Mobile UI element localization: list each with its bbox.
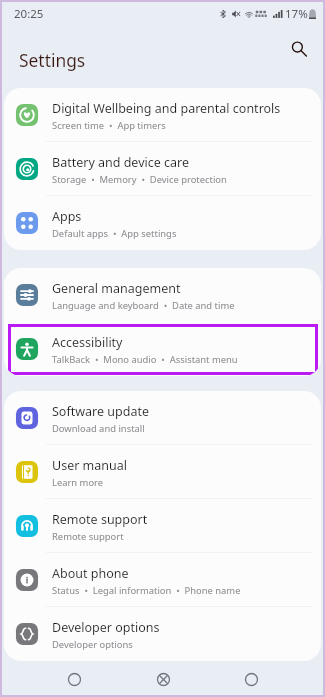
staticText: 17% [285,6,308,22]
staticText: Digital Wellbeing and parental controls [52,100,281,117]
button[interactable]: About phone [4,553,321,607]
staticText: TalkBack • Mono audio • Assistant menu [52,353,238,366]
staticText: Storage • Memory • Device protection [52,173,227,186]
staticText: Download and install [52,422,145,435]
staticText: Settings [19,48,86,72]
button[interactable]: Recents [59,664,89,694]
button[interactable]: Developer options [4,607,321,661]
staticText: Status • Legal information • Phone name [52,584,241,597]
staticText: Battery and device care [52,154,190,171]
staticText: Screen time • App timers [52,119,166,132]
button[interactable]: Home [148,664,178,694]
staticText: Apps [52,208,82,225]
button[interactable]: Software update [4,391,321,445]
staticText: Language and keyboard • Date and time [52,299,235,312]
button[interactable]: Apps [4,196,321,250]
staticText: Accessibility [52,334,123,351]
staticText: Default apps • App settings [52,227,177,240]
staticText: 20:25 [14,6,44,22]
button[interactable]: User manual [4,445,321,499]
button[interactable]: General management [4,268,321,322]
staticText: Developer options [52,638,133,651]
staticText: Remote support [52,511,148,528]
button[interactable]: Remote support [4,499,321,553]
button[interactable]: Battery and device care [4,142,321,196]
staticText: Remote support [52,530,124,543]
staticText: General management [52,280,181,297]
staticText: User manual [52,457,127,474]
staticText: Learn more [52,476,104,489]
button[interactable]: Search [286,36,312,62]
staticText: Developer options [52,619,160,636]
button[interactable]: Back [236,664,266,694]
button[interactable]: Digital Wellbeing and parental controls [4,88,321,142]
button[interactable]: Accessibility [4,322,321,376]
staticText: Software update [52,403,149,420]
staticText: About phone [52,565,129,582]
